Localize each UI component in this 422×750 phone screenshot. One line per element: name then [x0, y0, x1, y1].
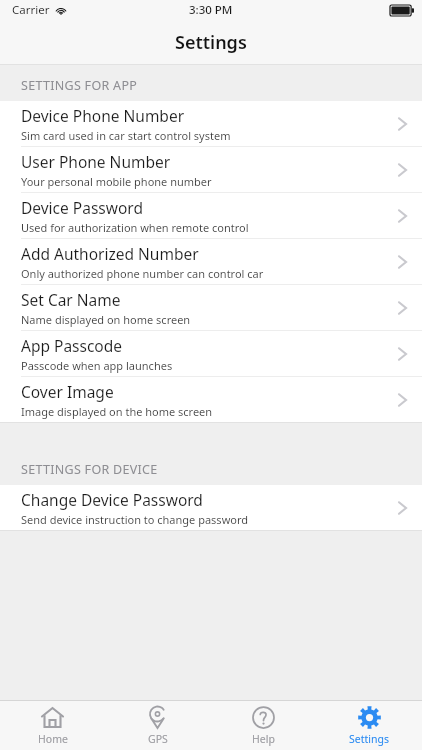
staticText: Send device instruction to change passwo…	[21, 512, 249, 527]
staticText: Change Device Password	[21, 489, 203, 510]
staticText: Your personal mobile phone number	[21, 174, 212, 189]
staticText: Passcode when app launches	[21, 358, 173, 373]
staticText: User Phone Number	[21, 151, 171, 172]
button[interactable]: Cover Image	[0, 377, 422, 422]
staticText: Add Authorized Number	[21, 243, 199, 264]
staticText: SETTINGS FOR APP	[21, 77, 138, 94]
staticText: Name displayed on home screen	[21, 312, 191, 327]
button[interactable]: App Passcode	[0, 331, 422, 376]
button[interactable]: GPS	[105, 701, 210, 750]
staticText: 3:30 PM	[189, 2, 233, 18]
staticText: Carrier	[12, 2, 50, 18]
button[interactable]: Help	[210, 701, 316, 750]
button[interactable]: Change Device Password	[0, 485, 422, 530]
button[interactable]: Device Phone Number	[0, 101, 422, 146]
staticText: Used for authorization when remote contr…	[21, 220, 249, 235]
staticText: GPS	[148, 732, 168, 746]
staticText: Set Car Name	[21, 289, 121, 310]
staticText: Device Phone Number	[21, 105, 185, 126]
staticText: Home	[38, 732, 68, 746]
staticText: Cover Image	[21, 381, 114, 402]
staticText: Help	[252, 732, 275, 746]
staticText: Sim card used in car start control syste…	[21, 128, 231, 143]
button[interactable]: Home	[0, 701, 105, 750]
staticText: Settings	[175, 30, 247, 55]
staticText: SETTINGS FOR DEVICE	[21, 461, 158, 478]
staticText: Only authorized phone number can control…	[21, 266, 264, 281]
button[interactable]: User Phone Number	[0, 147, 422, 192]
staticText: Device Password	[21, 197, 143, 218]
staticText: App Passcode	[21, 335, 123, 356]
button[interactable]: Settings	[316, 701, 422, 750]
button[interactable]: Add Authorized Number	[0, 239, 422, 284]
staticText: Image displayed on the home screen	[21, 404, 213, 419]
button[interactable]: Device Password	[0, 193, 422, 238]
button[interactable]: Set Car Name	[0, 285, 422, 330]
staticText: Settings	[349, 732, 389, 746]
